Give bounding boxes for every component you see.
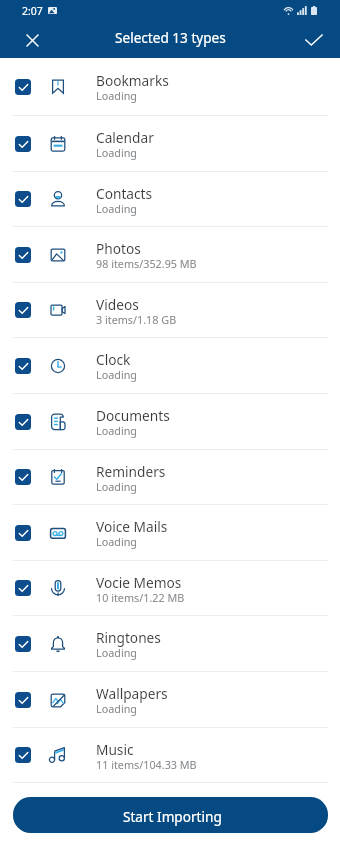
button[interactable]: Toggle Clock: [15, 358, 31, 374]
staticText: 98 items/352.95 MB: [96, 256, 197, 271]
button[interactable]: Toggle Documents: [0, 394, 340, 449]
staticText: Music: [96, 740, 134, 759]
button[interactable]: Toggle Contacts: [15, 191, 31, 207]
staticText: Contacts: [96, 184, 153, 203]
staticText: Start Importing: [123, 807, 222, 826]
staticText: Loading: [96, 145, 137, 160]
button[interactable]: Toggle Reminders: [15, 469, 31, 485]
button[interactable]: Toggle Voice Mails: [0, 505, 340, 560]
staticText: 3 items/1.18 GB: [96, 312, 177, 327]
button[interactable]: Toggle Calendar: [15, 136, 31, 152]
button[interactable]: Toggle Vocie Memos: [15, 580, 31, 596]
button[interactable]: Start Importing: [13, 797, 328, 833]
button[interactable]: Toggle Reminders: [0, 450, 340, 504]
staticText: Clock: [96, 350, 131, 369]
staticText: Selected 13 types: [115, 28, 226, 47]
button[interactable]: Toggle Wallpapers: [0, 672, 340, 727]
staticText: Loading: [96, 88, 137, 103]
staticText: Loading: [96, 423, 137, 438]
staticText: Loading: [96, 645, 137, 660]
staticText: Documents: [96, 406, 170, 425]
staticText: 10 items/1.22 MB: [96, 590, 185, 605]
staticText: Loading: [96, 479, 137, 494]
button[interactable]: Toggle Ringtones: [0, 616, 340, 671]
button[interactable]: Confirm: [296, 22, 332, 58]
staticText: Calendar: [96, 128, 154, 147]
button[interactable]: Toggle Ringtones: [15, 636, 31, 652]
staticText: Vocie Memos: [96, 573, 182, 592]
button[interactable]: Toggle Music: [15, 747, 31, 763]
staticText: Videos: [96, 295, 139, 314]
staticText: Loading: [96, 534, 137, 549]
button[interactable]: Toggle Wallpapers: [15, 692, 31, 708]
staticText: Voice Mails: [96, 517, 168, 536]
button[interactable]: Toggle Voice Mails: [15, 525, 31, 541]
button[interactable]: Toggle Calendar: [0, 116, 340, 171]
button[interactable]: Toggle Bookmarks: [0, 58, 340, 115]
button[interactable]: Toggle Videos: [0, 283, 340, 337]
staticText: Loading: [96, 701, 137, 716]
staticText: Ringtones: [96, 628, 161, 647]
staticText: Loading: [96, 367, 137, 382]
button[interactable]: Toggle Clock: [0, 338, 340, 393]
button[interactable]: Toggle Music: [0, 728, 340, 782]
button[interactable]: Toggle Contacts: [0, 172, 340, 226]
staticText: Bookmarks: [96, 71, 169, 90]
staticText: Photos: [96, 239, 141, 258]
staticText: 2:07: [22, 4, 43, 18]
staticText: Reminders: [96, 462, 166, 481]
button[interactable]: Toggle Photos: [15, 247, 31, 263]
button[interactable]: Close: [14, 22, 50, 58]
staticText: Loading: [96, 201, 137, 216]
button[interactable]: Toggle Videos: [15, 302, 31, 318]
staticText: Wallpapers: [96, 684, 168, 703]
button[interactable]: Toggle Photos: [0, 227, 340, 282]
button[interactable]: Toggle Bookmarks: [15, 79, 31, 95]
staticText: 11 items/104.33 MB: [96, 757, 197, 772]
button[interactable]: Toggle Documents: [15, 414, 31, 430]
button[interactable]: Toggle Vocie Memos: [0, 561, 340, 615]
